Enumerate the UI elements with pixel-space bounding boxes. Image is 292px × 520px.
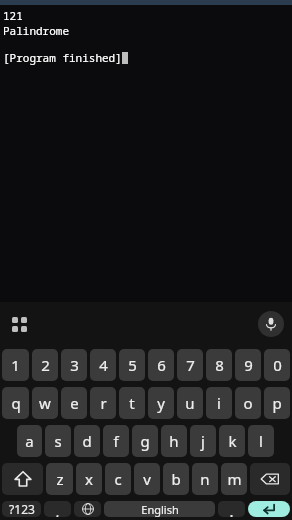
staticText: 8 xyxy=(215,355,224,375)
staticText: 5 xyxy=(128,355,137,375)
staticText: 121 xyxy=(3,8,23,23)
staticText: [Program finished] xyxy=(3,50,122,65)
staticText: s xyxy=(54,431,62,451)
button[interactable]: e xyxy=(61,387,87,419)
staticText: v xyxy=(143,469,151,489)
staticText: 0 xyxy=(273,355,282,375)
button[interactable]: n xyxy=(192,463,218,495)
staticText: 2 xyxy=(41,355,50,375)
staticText: z xyxy=(56,469,64,489)
button[interactable]: w xyxy=(32,387,58,419)
button[interactable]: 9 xyxy=(235,349,261,381)
button[interactable]: Shift xyxy=(2,463,43,495)
button[interactable]: k xyxy=(219,425,245,457)
staticText: 6 xyxy=(157,355,166,375)
button[interactable]: r xyxy=(90,387,116,419)
staticText: x xyxy=(85,469,93,489)
staticText: ?123 xyxy=(9,501,35,517)
staticText: k xyxy=(228,431,237,451)
button[interactable]: 3 xyxy=(61,349,87,381)
button[interactable]: a xyxy=(17,425,42,457)
staticText: p xyxy=(272,393,282,413)
staticText: h xyxy=(169,431,179,451)
staticText: . xyxy=(229,501,234,517)
staticText: English xyxy=(141,502,179,517)
button[interactable]: Voice input xyxy=(258,311,284,337)
button[interactable]: g xyxy=(132,425,158,457)
staticText: j xyxy=(201,431,205,451)
staticText: , xyxy=(55,501,60,517)
button[interactable]: l xyxy=(248,425,274,457)
staticText: l xyxy=(259,431,263,451)
staticText: e xyxy=(70,393,79,413)
staticText: b xyxy=(171,469,181,489)
button[interactable]: h xyxy=(161,425,187,457)
staticText: q xyxy=(11,393,21,413)
button[interactable]: j xyxy=(190,425,216,457)
button[interactable]: s xyxy=(45,425,71,457)
staticText: y xyxy=(157,393,165,413)
button[interactable]: 6 xyxy=(148,349,174,381)
staticText: a xyxy=(25,431,34,451)
button[interactable]: 5 xyxy=(119,349,145,381)
button[interactable]: English xyxy=(104,501,215,517)
button[interactable]: d xyxy=(74,425,100,457)
button[interactable]: o xyxy=(235,387,261,419)
staticText: m xyxy=(227,469,242,489)
button[interactable]: Toolbar xyxy=(6,311,32,337)
button[interactable]: b xyxy=(163,463,189,495)
staticText: i xyxy=(217,393,221,413)
button[interactable]: ?123 xyxy=(2,501,41,517)
button[interactable]: i xyxy=(206,387,232,419)
staticText: n xyxy=(200,469,210,489)
button[interactable]: t xyxy=(119,387,145,419)
button[interactable]: m xyxy=(221,463,247,495)
button[interactable]: Enter xyxy=(248,501,290,517)
button[interactable]: p xyxy=(264,387,290,419)
staticText: g xyxy=(140,431,150,451)
button[interactable]: y xyxy=(148,387,174,419)
staticText: w xyxy=(39,393,51,413)
button[interactable]: Backspace xyxy=(250,463,290,495)
button[interactable]: c xyxy=(105,463,131,495)
button[interactable]: 4 xyxy=(90,349,116,381)
button[interactable]: 7 xyxy=(177,349,203,381)
button[interactable]: q xyxy=(2,387,29,419)
staticText: 7 xyxy=(186,355,195,375)
staticText: f xyxy=(113,431,119,451)
button[interactable]: Change language xyxy=(74,501,101,517)
staticText: 9 xyxy=(244,355,253,375)
button[interactable]: x xyxy=(76,463,102,495)
button[interactable]: f xyxy=(103,425,129,457)
staticText: u xyxy=(185,393,195,413)
staticText: r xyxy=(100,393,107,413)
staticText: 3 xyxy=(70,355,79,375)
button[interactable]: 2 xyxy=(32,349,58,381)
button[interactable]: , xyxy=(44,501,71,517)
staticText: d xyxy=(82,431,92,451)
button[interactable]: u xyxy=(177,387,203,419)
button[interactable]: 8 xyxy=(206,349,232,381)
staticText: t xyxy=(129,393,135,413)
button[interactable]: 1 xyxy=(2,349,29,381)
staticText: Palindrome xyxy=(3,23,69,38)
button[interactable]: z xyxy=(46,463,73,495)
staticText: 4 xyxy=(99,355,108,375)
staticText: o xyxy=(243,393,253,413)
button[interactable]: v xyxy=(134,463,160,495)
button[interactable]: . xyxy=(218,501,245,517)
button[interactable]: 0 xyxy=(264,349,290,381)
staticText: 1 xyxy=(11,355,20,375)
staticText: c xyxy=(114,469,122,489)
